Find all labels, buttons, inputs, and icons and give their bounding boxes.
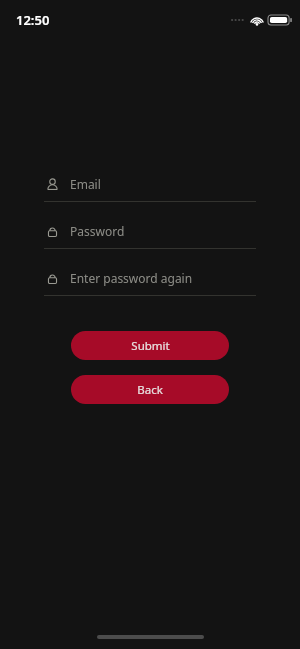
button[interactable]: Submit (71, 331, 229, 360)
button[interactable]: Back (71, 375, 229, 404)
staticText: Email (70, 176, 101, 192)
button[interactable]: Email (44, 176, 256, 202)
button[interactable]: Enter password again (44, 270, 256, 296)
staticText: Enter password again (70, 270, 193, 286)
staticText: Password (70, 223, 125, 239)
staticText: Back (137, 382, 163, 398)
staticText: 12:50 (16, 11, 50, 29)
staticText: Submit (131, 338, 170, 354)
button[interactable]: Password (44, 223, 256, 249)
